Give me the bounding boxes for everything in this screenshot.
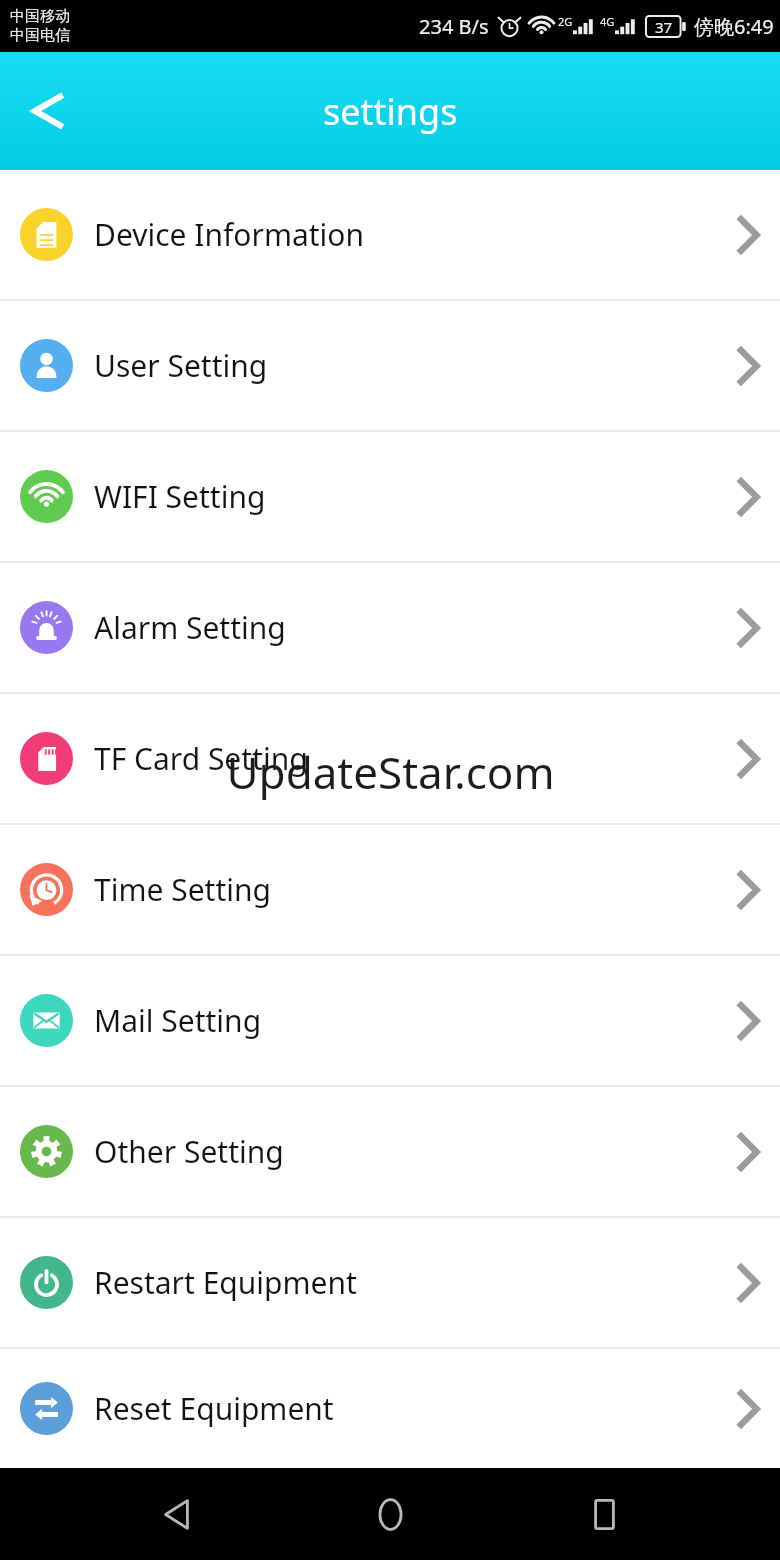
- staticText: 中国移动: [10, 7, 70, 26]
- button[interactable]: WIFI Setting: [0, 432, 780, 561]
- staticText: Other Setting: [94, 1131, 284, 1172]
- staticText: Mail Setting: [94, 1000, 262, 1041]
- button[interactable]: Mail Setting: [0, 956, 780, 1085]
- button[interactable]: Other Setting: [0, 1087, 780, 1216]
- staticText: 傍晚6:49: [694, 13, 774, 40]
- staticText: 37: [655, 17, 673, 37]
- staticText: 4G: [600, 14, 615, 29]
- button[interactable]: User Setting: [0, 301, 780, 430]
- staticText: Alarm Setting: [94, 607, 286, 648]
- staticText: 中国电信: [10, 26, 70, 45]
- staticText: User Setting: [94, 345, 268, 386]
- staticText: Reset Equipment: [94, 1388, 334, 1429]
- staticText: UpdateStar.com: [226, 742, 555, 802]
- staticText: 2G: [558, 14, 573, 29]
- button[interactable]: Device Information: [0, 170, 780, 299]
- staticText: Restart Equipment: [94, 1262, 357, 1303]
- button[interactable]: Restart Equipment: [0, 1218, 780, 1347]
- button[interactable]: Home: [353, 1477, 427, 1551]
- button[interactable]: Alarm Setting: [0, 563, 780, 692]
- button[interactable]: Reset Equipment: [0, 1349, 780, 1468]
- button[interactable]: Back: [140, 1477, 214, 1551]
- staticText: TF Card Setting: [94, 738, 308, 779]
- staticText: Time Setting: [94, 869, 271, 910]
- button[interactable]: Time Setting: [0, 825, 780, 954]
- staticText: WIFI Setting: [94, 476, 266, 517]
- staticText: settings: [323, 87, 458, 136]
- button[interactable]: TF Card Setting: [0, 694, 780, 823]
- button[interactable]: Recent apps: [567, 1477, 641, 1551]
- staticText: 234 B/s: [419, 13, 489, 40]
- staticText: Device Information: [94, 214, 365, 255]
- button[interactable]: Back: [12, 78, 78, 144]
